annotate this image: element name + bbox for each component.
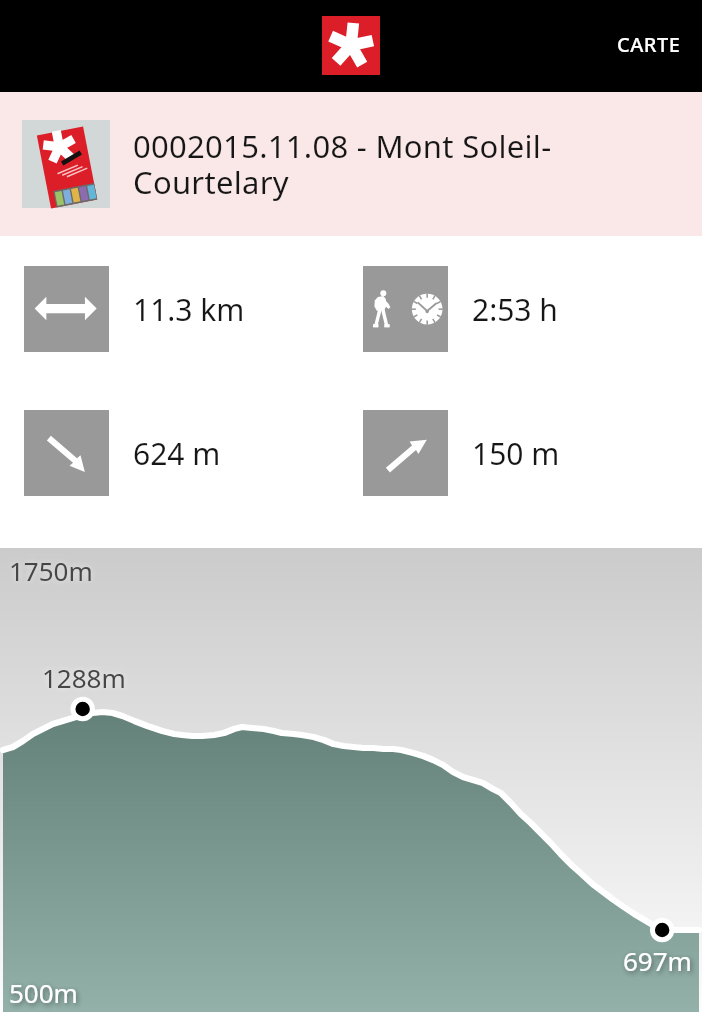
staticText: 1750m — [9, 553, 93, 588]
button[interactable]: Elevation profile — [0, 548, 702, 1012]
staticText: CARTE — [617, 31, 681, 58]
button[interactable]: 11.3 km — [24, 266, 245, 352]
button[interactable]: SwitzerlandMobility home — [322, 16, 380, 75]
button[interactable]: 624 m — [24, 410, 221, 496]
staticText: 150 m — [472, 433, 560, 474]
staticText: 0002015.11.08 - Mont Soleil-Courtelary — [133, 125, 678, 203]
button[interactable]: CARTE — [593, 17, 702, 76]
staticText: 697m — [623, 943, 692, 978]
staticText: 624 m — [133, 433, 221, 474]
button[interactable]: 2:53 h — [363, 266, 558, 352]
staticText: 11.3 km — [133, 289, 245, 330]
staticText: 2:53 h — [472, 289, 558, 330]
button[interactable]: 0002015.11.08 - Mont Soleil-Courtelary — [0, 92, 702, 236]
staticText: 1288m — [42, 660, 126, 695]
button[interactable]: 150 m — [363, 410, 560, 496]
staticText: 500m — [9, 975, 78, 1010]
